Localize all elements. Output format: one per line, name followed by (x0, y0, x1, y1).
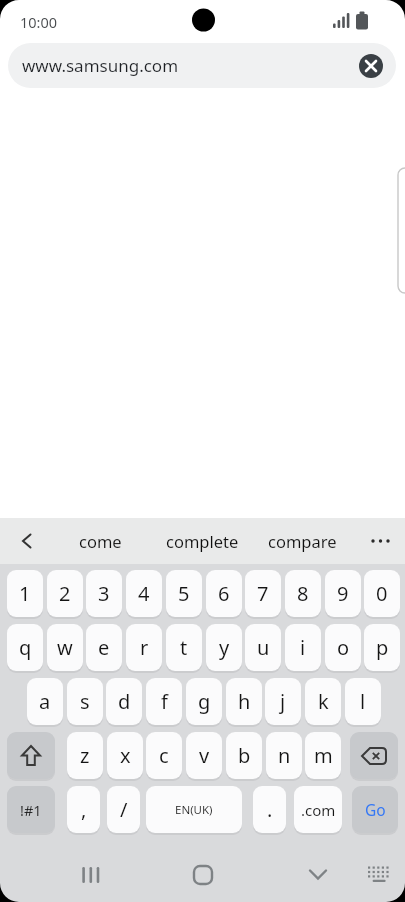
button[interactable]: 8 (285, 570, 321, 617)
button[interactable]: EN(UK) (146, 786, 242, 833)
staticText: h (238, 688, 251, 715)
button[interactable]: a (27, 678, 63, 725)
button[interactable]: 4 (126, 570, 162, 617)
button[interactable]: 2 (47, 570, 83, 617)
staticText: 3 (98, 580, 110, 607)
staticText: e (98, 634, 110, 661)
button[interactable]: / (107, 786, 140, 833)
button[interactable]: c (146, 732, 182, 779)
button[interactable]: n (266, 732, 302, 779)
button[interactable]: m (305, 732, 341, 779)
button[interactable]: 1 (7, 570, 43, 617)
button[interactable]: 5 (166, 570, 202, 617)
button[interactable]: p (364, 624, 400, 671)
button[interactable]: come (52, 518, 148, 564)
button[interactable] (360, 518, 402, 564)
staticText: 6 (218, 580, 230, 607)
staticText: g (198, 688, 211, 715)
button[interactable]: r (126, 624, 162, 671)
button[interactable] (6, 518, 46, 564)
button[interactable]: d (106, 678, 142, 725)
staticText: 0 (376, 580, 388, 607)
button[interactable]: k (305, 678, 341, 725)
button[interactable]: compare (254, 518, 350, 564)
button[interactable]: t (166, 624, 202, 671)
button[interactable]: h (226, 678, 262, 725)
button[interactable]: 7 (245, 570, 281, 617)
staticText: k (318, 688, 329, 715)
staticText: l (360, 688, 366, 715)
staticText: 5 (178, 580, 190, 607)
button[interactable]: j (265, 678, 301, 725)
staticText: o (337, 634, 350, 661)
staticText: f (161, 688, 168, 715)
staticText: y (219, 634, 230, 661)
staticText: d (118, 688, 131, 715)
staticText: q (19, 634, 32, 661)
button[interactable]: www.samsung.com (8, 43, 396, 88)
button[interactable]: . (253, 786, 286, 833)
staticText: come (79, 530, 122, 552)
button[interactable]: complete (154, 518, 250, 564)
staticText: 9 (337, 580, 349, 607)
button[interactable] (350, 732, 398, 779)
staticText: 7 (257, 580, 269, 607)
button[interactable]: o (325, 624, 361, 671)
staticText: s (80, 688, 90, 715)
staticText: 2 (59, 580, 71, 607)
staticText: t (180, 634, 188, 661)
button[interactable]: .com (294, 786, 342, 833)
button[interactable] (7, 732, 55, 779)
button[interactable]: e (86, 624, 122, 671)
button[interactable]: b (226, 732, 262, 779)
button[interactable]: x (107, 732, 143, 779)
button[interactable]: 6 (206, 570, 242, 617)
staticText: . (267, 796, 273, 823)
staticText: b (238, 742, 251, 769)
button[interactable]: 0 (364, 570, 400, 617)
staticText: a (39, 688, 51, 715)
button[interactable]: v (186, 732, 222, 779)
staticText: complete (166, 530, 239, 552)
staticText: , (81, 796, 87, 823)
staticText: compare (268, 530, 337, 552)
staticText: v (199, 742, 210, 769)
staticText: w (57, 634, 73, 661)
staticText: r (140, 634, 149, 661)
button[interactable]: g (186, 678, 222, 725)
button[interactable]: y (206, 624, 242, 671)
staticText: m (314, 742, 333, 769)
button[interactable]: !#1 (7, 786, 55, 833)
button[interactable]: z (67, 732, 103, 779)
button[interactable]: w (47, 624, 83, 671)
staticText: EN(UK) (175, 802, 213, 818)
staticText: i (300, 634, 306, 661)
button[interactable]: s (67, 678, 103, 725)
button[interactable]: Go (352, 786, 398, 833)
button[interactable]: q (7, 624, 43, 671)
staticText: !#1 (20, 800, 42, 820)
staticText: 1 (19, 580, 31, 607)
staticText: / (120, 796, 128, 823)
button[interactable]: 3 (86, 570, 122, 617)
staticText: Go (365, 799, 386, 820)
button[interactable]: l (345, 678, 381, 725)
staticText: z (80, 742, 90, 769)
staticText: j (280, 688, 286, 715)
staticText: p (376, 634, 389, 661)
button[interactable] (359, 54, 383, 78)
staticText: c (159, 742, 169, 769)
staticText: u (257, 634, 270, 661)
staticText: 10:00 (20, 12, 58, 32)
staticText: n (278, 742, 291, 769)
button[interactable]: 9 (325, 570, 361, 617)
button[interactable]: f (146, 678, 182, 725)
staticText: 8 (297, 580, 309, 607)
button[interactable]: u (245, 624, 281, 671)
button[interactable]: i (285, 624, 321, 671)
button[interactable]: , (67, 786, 100, 833)
staticText: www.samsung.com (22, 54, 179, 77)
staticText: 4 (138, 580, 150, 607)
staticText: x (120, 742, 131, 769)
staticText: .com (301, 800, 336, 820)
